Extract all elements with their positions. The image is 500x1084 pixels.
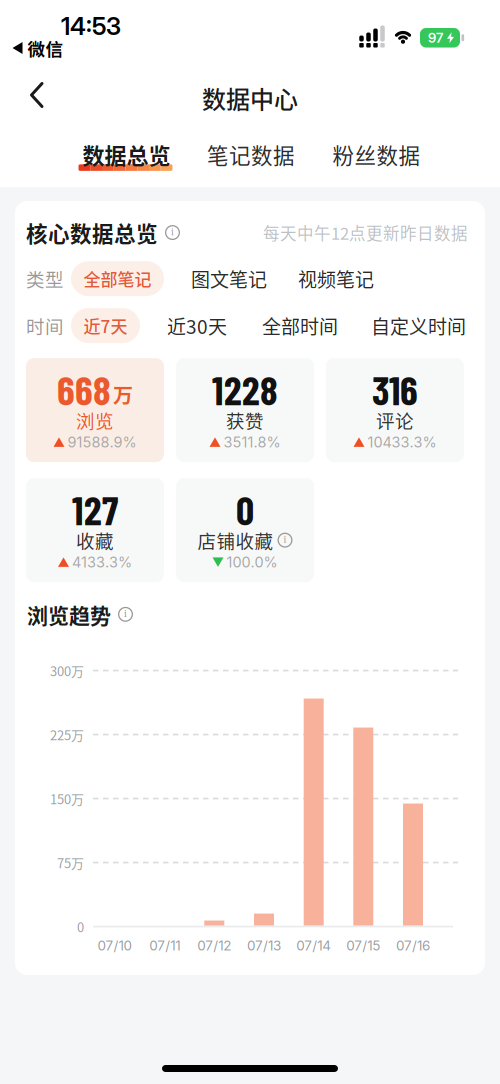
staticText: 时间 [26, 312, 64, 339]
button[interactable]: 全部笔记 [71, 261, 164, 296]
staticText: 07/10 [97, 937, 132, 954]
button[interactable]: 近30天 [167, 312, 227, 339]
staticText: i [283, 534, 286, 546]
staticText: 4133.3% [72, 553, 132, 571]
button[interactable]: 核心数据说明 [165, 225, 180, 240]
staticText: 笔记数据 [207, 139, 295, 170]
staticText: 07/14 [296, 937, 331, 954]
staticText: 225万 [50, 725, 84, 744]
staticText: 粉丝数据 [332, 139, 420, 170]
staticText: 07/16 [396, 937, 430, 954]
staticText: 视频笔记 [298, 265, 374, 292]
staticText: 0 [77, 917, 84, 936]
staticText: i [171, 227, 174, 238]
button[interactable]: 浏览趋势说明 [118, 607, 133, 622]
staticText: 668 [57, 365, 111, 413]
staticText: 微信 [27, 35, 63, 61]
button[interactable]: 粉丝数据 [332, 139, 420, 170]
staticText: i [124, 608, 127, 620]
staticText: 店铺收藏 [197, 527, 273, 553]
staticText: 浏览趋势 [27, 599, 111, 629]
staticText: 收藏 [76, 527, 114, 553]
staticText: 每天中午12点更新昨日数据 [263, 221, 468, 244]
staticText: 300万 [50, 661, 84, 680]
staticText: 浏览 [76, 407, 114, 433]
staticText: 14:53 [61, 11, 121, 41]
staticText: 核心数据总览 [26, 217, 158, 248]
staticText: 0 [236, 485, 254, 533]
staticText: 07/15 [346, 937, 380, 954]
staticText: 数据总览 [82, 139, 170, 170]
staticText: 近30天 [167, 312, 227, 339]
staticText: 类型 [26, 265, 64, 292]
staticText: 97 [428, 30, 443, 46]
staticText: 全部时间 [262, 312, 338, 339]
staticText: 1228 [212, 365, 278, 413]
staticText: 图文笔记 [191, 265, 267, 292]
button[interactable]: 笔记数据 [207, 139, 295, 170]
staticText: 近7天 [83, 313, 127, 338]
button[interactable]: 返回 [30, 82, 44, 108]
button[interactable]: 数据总览 [82, 139, 170, 170]
staticText: 10433.3% [367, 433, 436, 451]
staticText: 316 [372, 365, 418, 413]
button[interactable]: 视频笔记 [298, 265, 374, 292]
staticText: 自定义时间 [371, 312, 466, 339]
button[interactable]: 店铺收藏说明 [277, 533, 292, 548]
staticText: 3511.8% [223, 433, 280, 451]
staticText: 万 [113, 380, 133, 409]
button[interactable]: 近7天 [71, 308, 140, 343]
staticText: 全部笔记 [83, 266, 151, 291]
staticText: 100.0% [226, 553, 277, 571]
button[interactable]: 自定义时间 [371, 312, 466, 339]
button[interactable]: 全部时间 [262, 312, 338, 339]
staticText: 07/12 [197, 937, 231, 954]
staticText: 数据中心 [202, 81, 298, 115]
button[interactable]: 图文笔记 [191, 265, 267, 292]
staticText: 07/13 [247, 937, 281, 954]
staticText: 150万 [50, 789, 84, 808]
staticText: 07/11 [149, 937, 180, 954]
staticText: 91588.9% [67, 433, 136, 451]
staticText: 75万 [57, 853, 84, 872]
button[interactable]: 返回微信 [12, 35, 63, 61]
staticText: 127 [72, 485, 118, 533]
staticText: 获赞 [226, 407, 264, 433]
staticText: 评论 [376, 407, 414, 433]
